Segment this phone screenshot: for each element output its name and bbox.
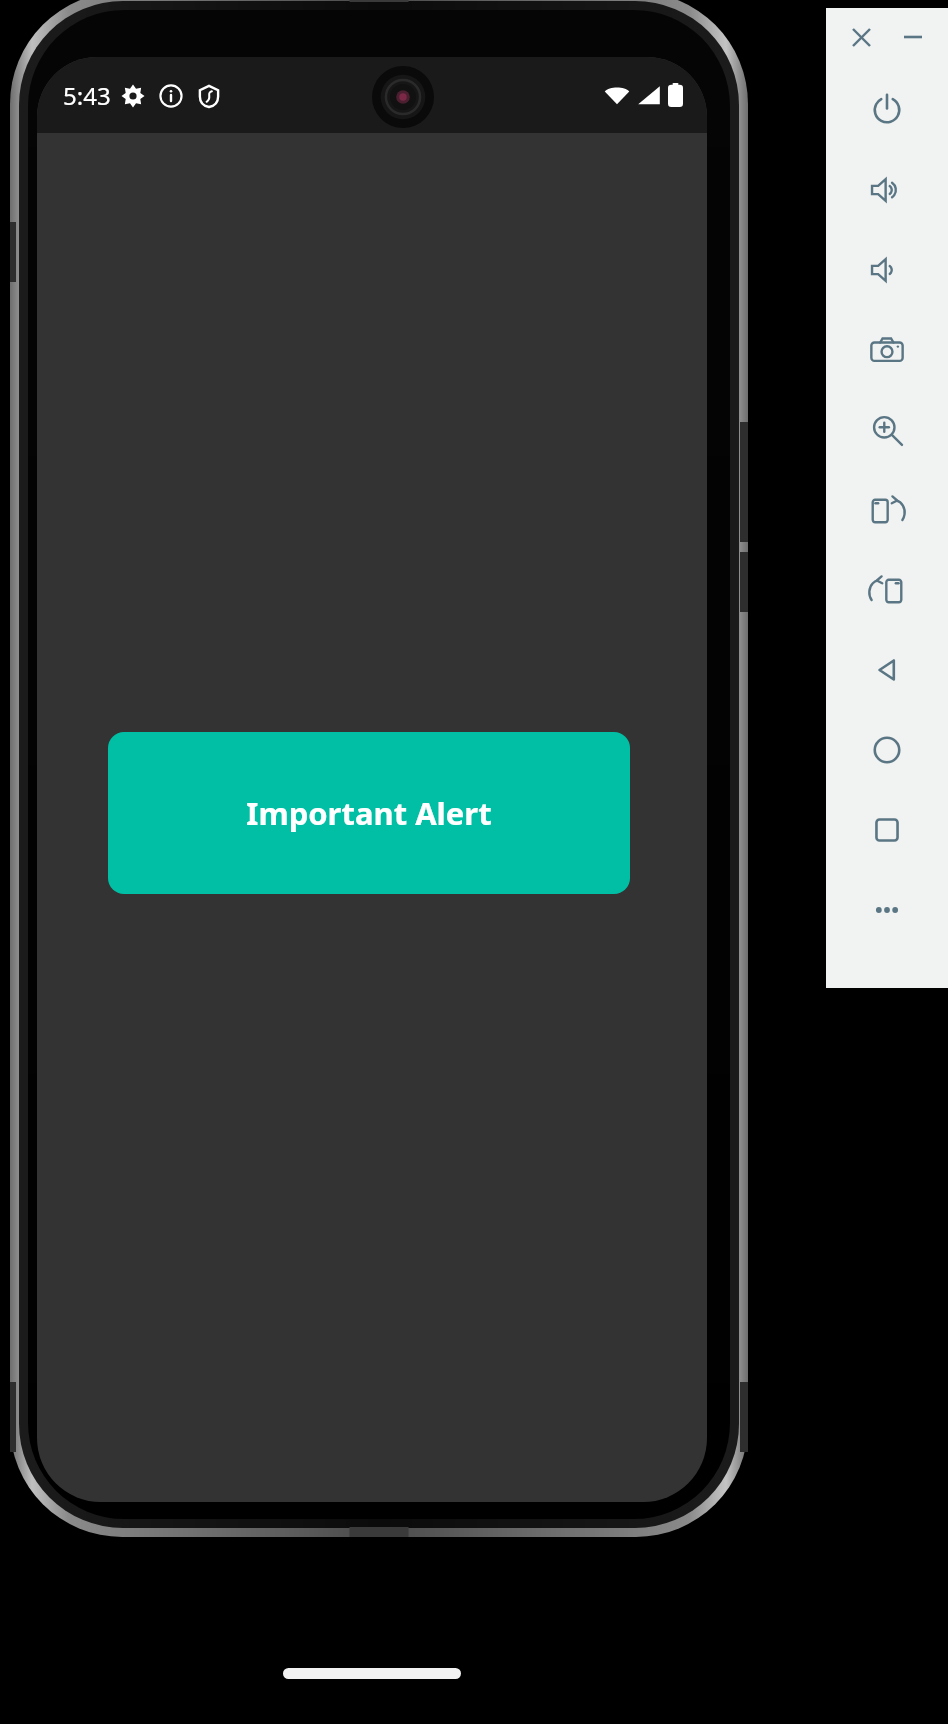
- button[interactable]: Zoom: [826, 390, 948, 470]
- button[interactable]: Close: [844, 20, 878, 54]
- staticText: Important Alert: [246, 792, 492, 834]
- button[interactable]: Important Alert: [108, 732, 630, 894]
- button[interactable]: Home: [826, 710, 948, 790]
- button[interactable]: Volume down: [826, 230, 948, 310]
- staticText: 5:43: [63, 79, 111, 112]
- button[interactable]: Power: [826, 70, 948, 150]
- button[interactable]: Minimize: [896, 20, 930, 54]
- button[interactable]: Recents: [826, 790, 948, 870]
- button[interactable]: More: [826, 870, 948, 950]
- button[interactable]: Screenshot: [826, 310, 948, 390]
- button[interactable]: Back: [826, 630, 948, 710]
- button[interactable]: Rotate left: [826, 470, 948, 550]
- button[interactable]: Volume up: [826, 150, 948, 230]
- button[interactable]: Rotate right: [826, 550, 948, 630]
